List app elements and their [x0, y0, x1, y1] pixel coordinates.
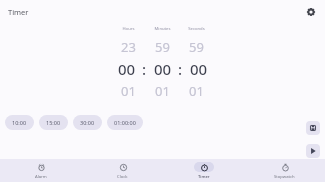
- staticText: 10:00: [12, 119, 27, 126]
- button[interactable]: Timer: [163, 159, 244, 182]
- button[interactable]: Start timer: [306, 144, 320, 158]
- button[interactable]: Save preset: [306, 121, 320, 135]
- staticText: 59: [150, 38, 175, 56]
- button[interactable]: 10:00: [5, 115, 34, 130]
- staticText: Minutes: [150, 26, 175, 32]
- staticText: 00: [186, 59, 211, 79]
- staticText: 23: [116, 38, 141, 56]
- staticText: 01: [150, 82, 175, 100]
- button[interactable]: Alarm: [0, 159, 82, 182]
- staticText: 00: [150, 59, 175, 79]
- staticText: Timer: [198, 174, 210, 180]
- button[interactable]: Stopwatch: [244, 159, 325, 182]
- staticText: Seconds: [184, 26, 209, 32]
- staticText: 01: [184, 82, 209, 100]
- staticText: :: [142, 59, 147, 79]
- staticText: :: [178, 59, 183, 79]
- staticText: Alarm: [35, 174, 47, 180]
- staticText: 59: [184, 38, 209, 56]
- button[interactable]: 30:00: [73, 115, 102, 130]
- staticText: Clock: [117, 174, 128, 180]
- staticText: Timer: [8, 7, 29, 17]
- staticText: 01: [116, 82, 141, 100]
- staticText: 01:00:00: [114, 119, 136, 126]
- button[interactable]: 15:00: [39, 115, 68, 130]
- staticText: 30:00: [80, 119, 95, 126]
- button[interactable]: 01:00:00: [107, 115, 143, 130]
- button[interactable]: Clock: [82, 159, 163, 182]
- staticText: Stopwatch: [274, 174, 295, 180]
- staticText: Hours: [116, 26, 141, 32]
- staticText: 00: [114, 59, 139, 79]
- button[interactable]: Settings: [303, 4, 319, 20]
- staticText: 15:00: [46, 119, 61, 126]
